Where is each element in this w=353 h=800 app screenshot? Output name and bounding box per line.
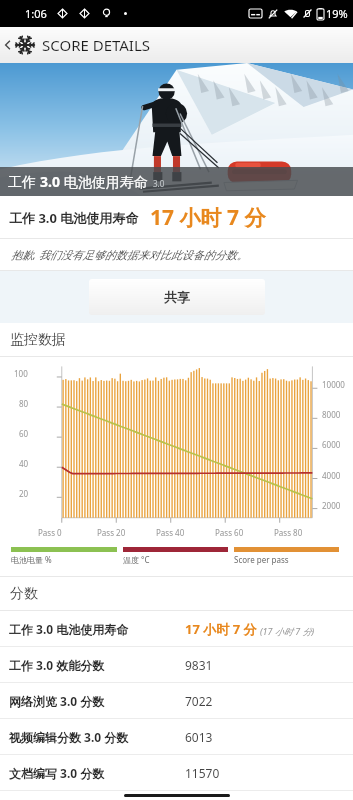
staticText: 文档编写 3.0 分数	[9, 765, 105, 781]
staticText: 8000	[322, 409, 341, 420]
staticText: 工作 3.0 电池使用寿命	[9, 621, 129, 637]
staticText: Pass 80	[274, 527, 303, 538]
button[interactable]: 共享	[89, 279, 265, 315]
staticText: 6000	[322, 439, 341, 450]
staticText: 电池电量 %	[11, 554, 52, 565]
staticText: 1:06	[25, 6, 47, 21]
staticText: 工作 3.0 电池使用寿命	[9, 209, 139, 227]
staticText: 11570	[185, 765, 220, 781]
staticText: Pass 20	[97, 527, 126, 538]
staticText: Pass 0	[38, 527, 62, 538]
staticText: 抱歉, 我们没有足够的数据来对比此设备的分数。	[11, 247, 248, 262]
staticText: 9831	[185, 657, 213, 673]
button[interactable]: 视频编辑分数 3.0 分数	[0, 719, 353, 754]
button[interactable]: 网络浏览 3.0 分数	[0, 683, 353, 718]
staticText: 7022	[185, 693, 213, 709]
staticText: 工作	[8, 172, 40, 191]
button[interactable]: 工作 3.0 电池使用寿命	[0, 611, 353, 646]
staticText: 40	[19, 458, 29, 469]
staticText: 19%	[326, 6, 348, 21]
staticText: Pass 60	[215, 527, 244, 538]
staticText: 温度 °C	[123, 554, 150, 565]
staticText: 共享	[164, 289, 190, 305]
other: Back	[2, 39, 14, 51]
staticText: 60	[19, 428, 29, 439]
staticText: Score per pass	[234, 554, 289, 565]
staticText: 4000	[322, 470, 341, 481]
staticText: 分数	[10, 585, 38, 603]
staticText: 80	[19, 398, 29, 409]
staticText: (17 小时 7 分)	[260, 625, 315, 637]
button[interactable]: 文档编写 3.0 分数	[0, 755, 353, 790]
staticText: 17 小时 7 分	[185, 620, 257, 638]
staticText: 20	[19, 488, 29, 499]
staticText: 6013	[185, 729, 213, 745]
button[interactable]: Back	[0, 27, 353, 63]
staticText: 网络浏览 3.0 分数	[9, 693, 105, 709]
staticText: 10000	[322, 379, 345, 390]
staticText: 3.0	[40, 172, 60, 191]
staticText: 17 小时 7 分	[150, 203, 266, 232]
staticText: 电池使用寿命	[60, 172, 148, 191]
staticText: 视频编辑分数 3.0 分数	[9, 729, 129, 745]
button[interactable]: 工作 3.0 效能分数	[0, 647, 353, 682]
staticText: 100	[14, 368, 28, 379]
staticText: Pass 40	[156, 527, 185, 538]
staticText: 工作 3.0 效能分数	[9, 657, 105, 673]
staticText: SCORE DETAILS	[42, 35, 151, 55]
staticText: 监控数据	[10, 331, 66, 349]
staticText: 3.0	[153, 178, 165, 189]
staticText: 2000	[322, 500, 341, 511]
